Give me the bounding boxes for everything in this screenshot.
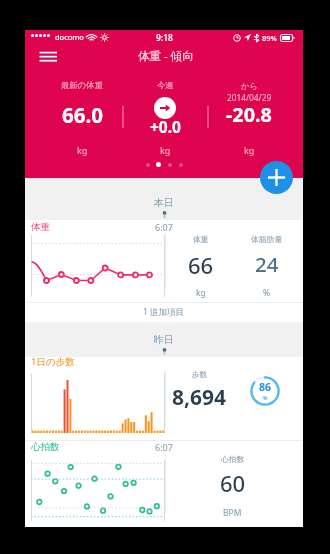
staticText: 89% bbox=[262, 33, 277, 43]
staticText: 体重 - 傾向 bbox=[138, 48, 194, 64]
staticText: 1 追加項目 bbox=[143, 306, 185, 318]
staticText: 6:07 bbox=[155, 441, 173, 453]
staticText: 1日の歩数 bbox=[31, 355, 75, 368]
staticText: 66.0 bbox=[62, 101, 103, 129]
staticText: から bbox=[241, 81, 258, 91]
staticText: kg bbox=[160, 144, 171, 156]
staticText: 今週 bbox=[157, 80, 174, 90]
button[interactable]: 体重 bbox=[25, 220, 303, 302]
staticText: -20.8 bbox=[226, 101, 272, 128]
staticText: docomo bbox=[55, 32, 84, 42]
button[interactable]: Open navigation menu bbox=[34, 46, 62, 68]
staticText: 心拍数 bbox=[31, 441, 60, 453]
staticText: 8,694 bbox=[172, 383, 227, 412]
staticText: 体脂肪量 bbox=[251, 234, 283, 244]
staticText: kg bbox=[196, 287, 206, 299]
staticText: +0.0 bbox=[150, 116, 181, 137]
button[interactable]: 心拍数 bbox=[25, 441, 303, 527]
staticText: 2014/04/29 bbox=[227, 92, 272, 103]
button[interactable]: 1 追加項目 bbox=[25, 302, 303, 322]
staticText: 昨日 bbox=[154, 333, 174, 346]
staticText: 体重 bbox=[31, 221, 50, 233]
staticText: 24 bbox=[255, 250, 279, 278]
staticText: 心拍数 bbox=[221, 454, 245, 464]
staticText: BPM bbox=[223, 507, 242, 519]
staticText: 歩数 bbox=[192, 370, 207, 379]
staticText: % bbox=[263, 394, 268, 401]
staticText: 86 bbox=[259, 380, 272, 394]
staticText: 体重 bbox=[193, 234, 209, 244]
staticText: 66 bbox=[188, 250, 214, 280]
button[interactable]: Add new entry bbox=[260, 161, 293, 194]
staticText: 6:07 bbox=[155, 221, 173, 233]
staticText: 9:18 bbox=[156, 32, 173, 44]
staticText: kg bbox=[244, 144, 255, 156]
staticText: 最新の体重 bbox=[61, 80, 103, 90]
staticText: kg bbox=[77, 144, 88, 156]
staticText: % bbox=[263, 287, 271, 299]
button[interactable]: 1日の歩数 bbox=[25, 357, 303, 440]
staticText: 60 bbox=[220, 468, 246, 498]
staticText: 本日 bbox=[154, 196, 174, 209]
